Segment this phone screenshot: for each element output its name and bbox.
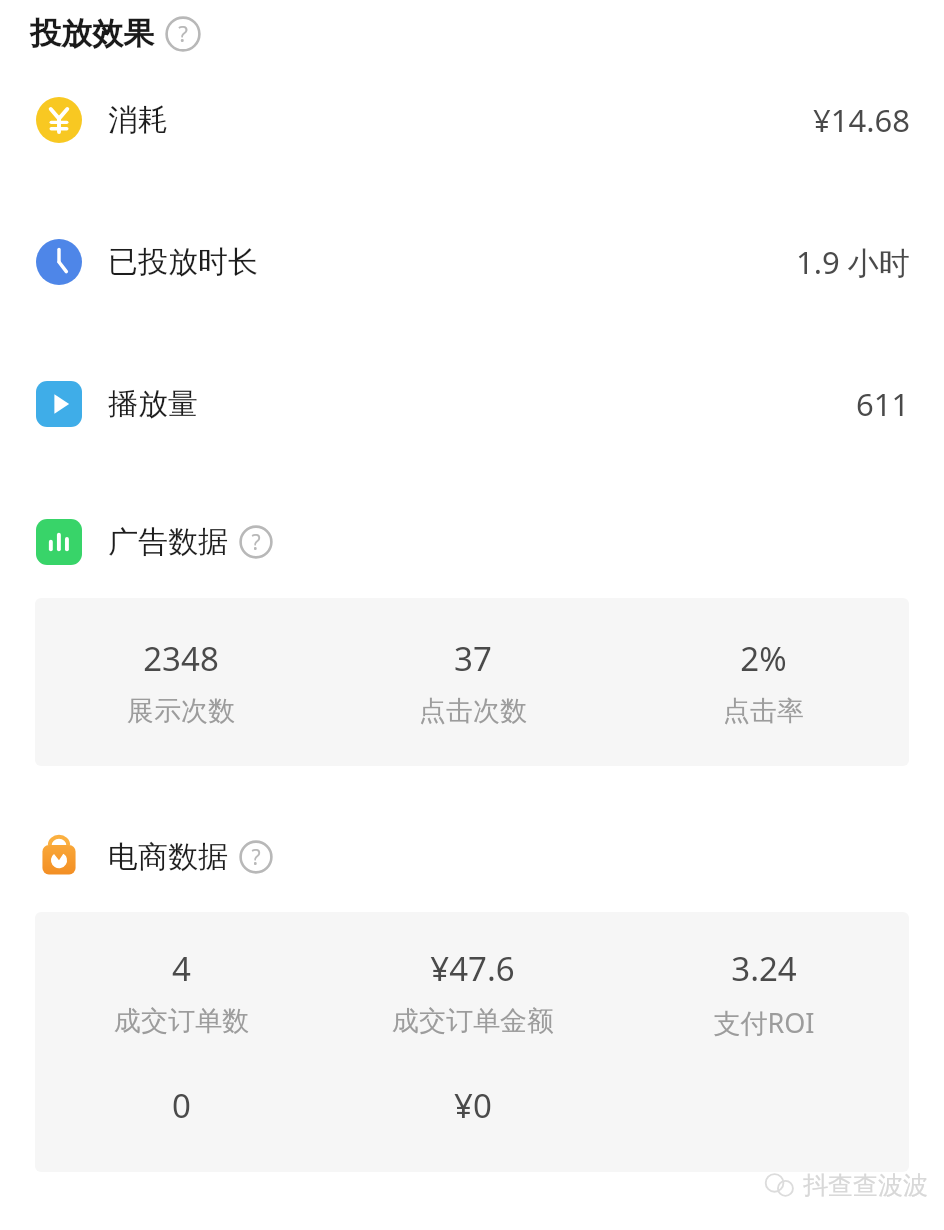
button[interactable]: 电商数据: [36, 834, 944, 880]
staticText: 消耗: [108, 101, 168, 139]
button[interactable]: 已投放时长: [36, 239, 910, 285]
staticText: 播放量: [108, 385, 198, 423]
button[interactable]: 广告数据: [36, 519, 944, 565]
staticText: 点击率: [723, 694, 804, 728]
staticText: ?: [251, 527, 261, 556]
button[interactable]: 2348: [35, 598, 909, 766]
staticText: ?: [251, 842, 261, 871]
button[interactable]: 4: [35, 912, 909, 1172]
staticText: ¥14.68: [813, 99, 910, 141]
staticText: ?: [178, 18, 188, 48]
staticText: 展示次数: [127, 694, 235, 728]
staticText: 成交订单金额: [392, 1004, 554, 1038]
staticText: 电商数据: [108, 838, 228, 876]
staticText: 37: [454, 636, 492, 681]
staticText: 3.24: [731, 946, 797, 991]
staticText: 点击次数: [419, 694, 527, 728]
staticText: 4: [172, 946, 191, 991]
staticText: 投放效果: [30, 14, 154, 53]
button[interactable]: 消耗: [36, 97, 910, 143]
staticText: 支付ROI: [713, 1004, 815, 1041]
other: 帮助: [165, 16, 201, 52]
button[interactable]: 播放量: [36, 381, 910, 427]
staticText: 2%: [740, 636, 787, 681]
staticText: 已投放时长: [108, 243, 258, 281]
staticText: 1.9 小时: [796, 241, 910, 283]
staticText: 611: [856, 383, 910, 425]
other: 帮助: [239, 525, 273, 559]
staticText: ¥47.6: [430, 946, 515, 991]
staticText: ¥0: [454, 1083, 492, 1128]
button[interactable]: 投放效果: [30, 14, 201, 53]
staticText: 成交订单数: [114, 1004, 249, 1038]
staticText: 抖查查波波: [803, 1170, 928, 1201]
staticText: 0: [172, 1083, 191, 1128]
staticText: 广告数据: [108, 523, 228, 561]
staticText: 2348: [143, 636, 219, 681]
other: 帮助: [239, 840, 273, 874]
